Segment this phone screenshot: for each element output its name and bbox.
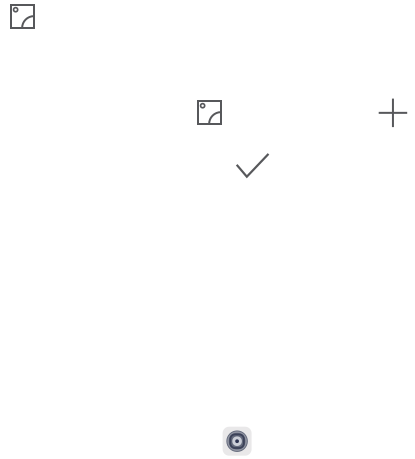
button[interactable]: Library — [10, 4, 35, 29]
button[interactable]: App — [223, 427, 252, 456]
button[interactable]: Add — [378, 98, 408, 128]
